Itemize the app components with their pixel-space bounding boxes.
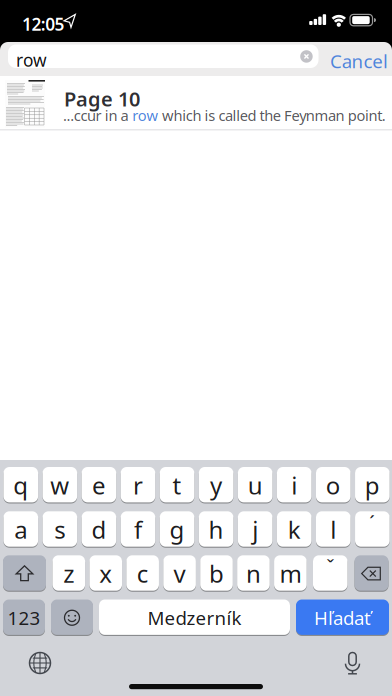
button[interactable]: Dictate <box>342 652 362 674</box>
button[interactable]: Medzerník <box>99 599 290 636</box>
staticText: Hľadať <box>314 605 371 630</box>
staticText: Page 10 <box>64 85 140 112</box>
button[interactable]: h <box>199 511 233 548</box>
button[interactable]: f <box>121 511 155 548</box>
button[interactable]: o <box>316 467 351 503</box>
staticText: s <box>54 514 65 545</box>
button[interactable]: y <box>199 467 233 503</box>
button[interactable]: z <box>52 555 85 592</box>
button[interactable]: j <box>238 511 272 548</box>
staticText: e <box>92 469 106 501</box>
staticText: g <box>169 514 184 545</box>
button[interactable]: v <box>163 555 196 592</box>
staticText: o <box>326 469 341 501</box>
button[interactable]: p <box>355 467 390 503</box>
staticText: q <box>13 469 28 501</box>
button[interactable]: x <box>89 555 122 592</box>
staticText: l <box>330 514 336 545</box>
button[interactable]: g <box>160 511 194 548</box>
staticText: v <box>174 558 186 589</box>
button[interactable]: k <box>277 511 311 548</box>
button[interactable]: ˇ <box>313 555 347 592</box>
button[interactable]: u <box>238 467 272 503</box>
staticText: z <box>63 558 74 589</box>
staticText: j <box>252 514 258 545</box>
button[interactable]: c <box>126 555 159 592</box>
staticText: ...ccur in a <box>63 105 132 125</box>
staticText: row <box>16 48 47 71</box>
staticText: m <box>279 558 301 589</box>
button[interactable]: n <box>237 555 270 592</box>
staticText: row <box>132 105 158 125</box>
button[interactable]: b <box>200 555 233 592</box>
staticText: a <box>14 514 27 545</box>
staticText: h <box>209 514 224 545</box>
button[interactable]: Delete <box>354 555 388 592</box>
button[interactable]: r <box>121 467 155 503</box>
button[interactable]: ´ <box>355 511 390 548</box>
button[interactable]: Hľadať <box>296 599 389 636</box>
button[interactable]: Page 10 <box>0 76 392 130</box>
button[interactable]: a <box>3 511 38 548</box>
staticText: 12:05 <box>22 12 65 35</box>
staticText: p <box>365 469 380 501</box>
staticText: x <box>99 558 112 589</box>
staticText: ´ <box>369 509 375 536</box>
staticText: y <box>210 469 222 501</box>
staticText: which is called the Feynman point. <box>158 105 386 125</box>
button[interactable]: s <box>43 511 77 548</box>
staticText: 123 <box>7 605 40 630</box>
staticText: t <box>172 469 181 501</box>
staticText: u <box>248 469 263 501</box>
button[interactable]: Clear text <box>300 50 313 63</box>
button[interactable]: q <box>3 467 38 503</box>
staticText: k <box>288 514 301 545</box>
button[interactable]: i <box>277 467 311 503</box>
button[interactable]: m <box>274 555 307 592</box>
staticText: i <box>291 469 297 501</box>
staticText: f <box>134 514 142 545</box>
button[interactable]: Next keyboard <box>29 652 50 673</box>
staticText: d <box>91 514 106 545</box>
button[interactable]: Numbers <box>3 599 45 636</box>
staticText: Cancel <box>330 48 388 73</box>
button[interactable]: Shift <box>3 555 46 592</box>
button[interactable]: e <box>82 467 116 503</box>
button[interactable]: Search <box>8 44 318 68</box>
staticText: c <box>137 558 149 589</box>
staticText: n <box>246 558 261 589</box>
staticText: w <box>50 469 69 501</box>
button[interactable]: d <box>82 511 116 548</box>
staticText: ˇ <box>326 553 334 580</box>
button[interactable]: l <box>316 511 351 548</box>
button[interactable]: t <box>160 467 194 503</box>
staticText: b <box>209 558 224 589</box>
button[interactable]: Cancel <box>330 48 388 73</box>
staticText: r <box>133 469 143 501</box>
button[interactable]: w <box>43 467 77 503</box>
button[interactable]: Emoji <box>51 599 93 636</box>
staticText: Medzerník <box>147 605 241 630</box>
